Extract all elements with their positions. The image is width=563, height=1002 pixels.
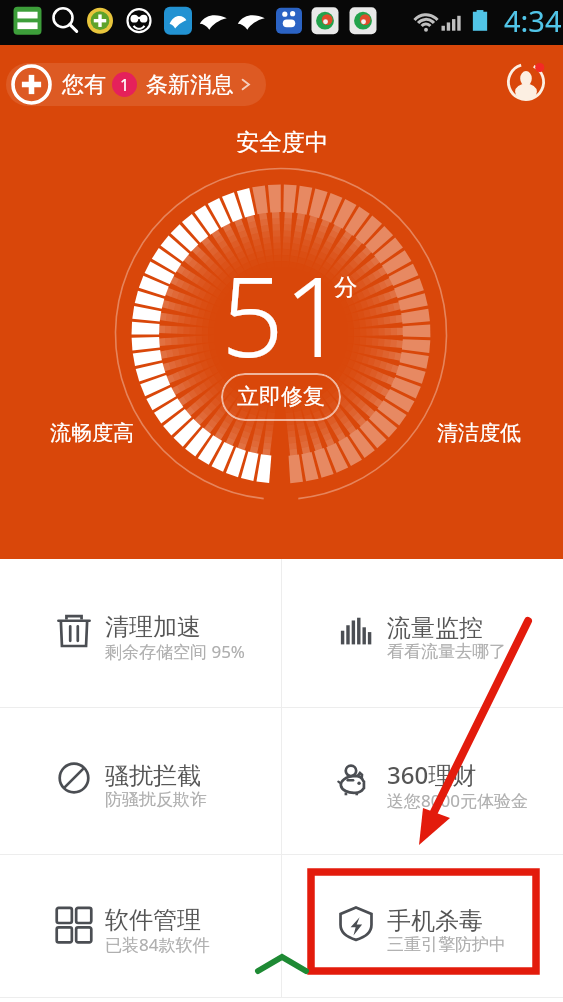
- button[interactable]: 软件管理: [0, 855, 281, 997]
- staticText: 送您8000元体验金: [387, 789, 528, 812]
- button[interactable]: 流量监控: [282, 559, 563, 707]
- staticText: 条新消息: [146, 71, 234, 99]
- staticText: 流畅度高: [50, 420, 134, 446]
- staticText: 软件管理: [105, 905, 201, 935]
- button[interactable]: 骚扰拦截: [0, 708, 281, 854]
- staticText: 4:34: [504, 1, 562, 40]
- staticText: 360理财: [387, 758, 477, 791]
- button[interactable]: 手机杀毒: [282, 855, 563, 997]
- staticText: 清洁度低: [437, 420, 521, 446]
- staticText: 流量监控: [387, 613, 483, 643]
- staticText: 1: [120, 74, 130, 96]
- staticText: 手机杀毒: [387, 906, 483, 936]
- button[interactable]: 立即修复: [221, 373, 341, 421]
- staticText: 防骚扰反欺诈: [105, 789, 207, 810]
- button[interactable]: 360理财: [282, 708, 563, 854]
- staticText: 51: [221, 239, 347, 389]
- staticText: 立即修复: [237, 383, 325, 411]
- staticText: 看看流量去哪了: [387, 641, 506, 662]
- button[interactable]: Profile: [504, 60, 548, 104]
- staticText: 您有: [62, 71, 106, 99]
- staticText: 已装84款软件: [105, 933, 210, 956]
- button[interactable]: 清理加速: [0, 559, 281, 707]
- staticText: 清理加速: [105, 612, 201, 642]
- staticText: 分: [334, 273, 357, 302]
- staticText: 安全度中: [236, 128, 328, 157]
- button[interactable]: 您有: [6, 63, 266, 106]
- staticText: 剩余存储空间 95%: [105, 640, 245, 663]
- staticText: 三重引擎防护中: [387, 934, 506, 955]
- staticText: 骚扰拦截: [105, 761, 201, 791]
